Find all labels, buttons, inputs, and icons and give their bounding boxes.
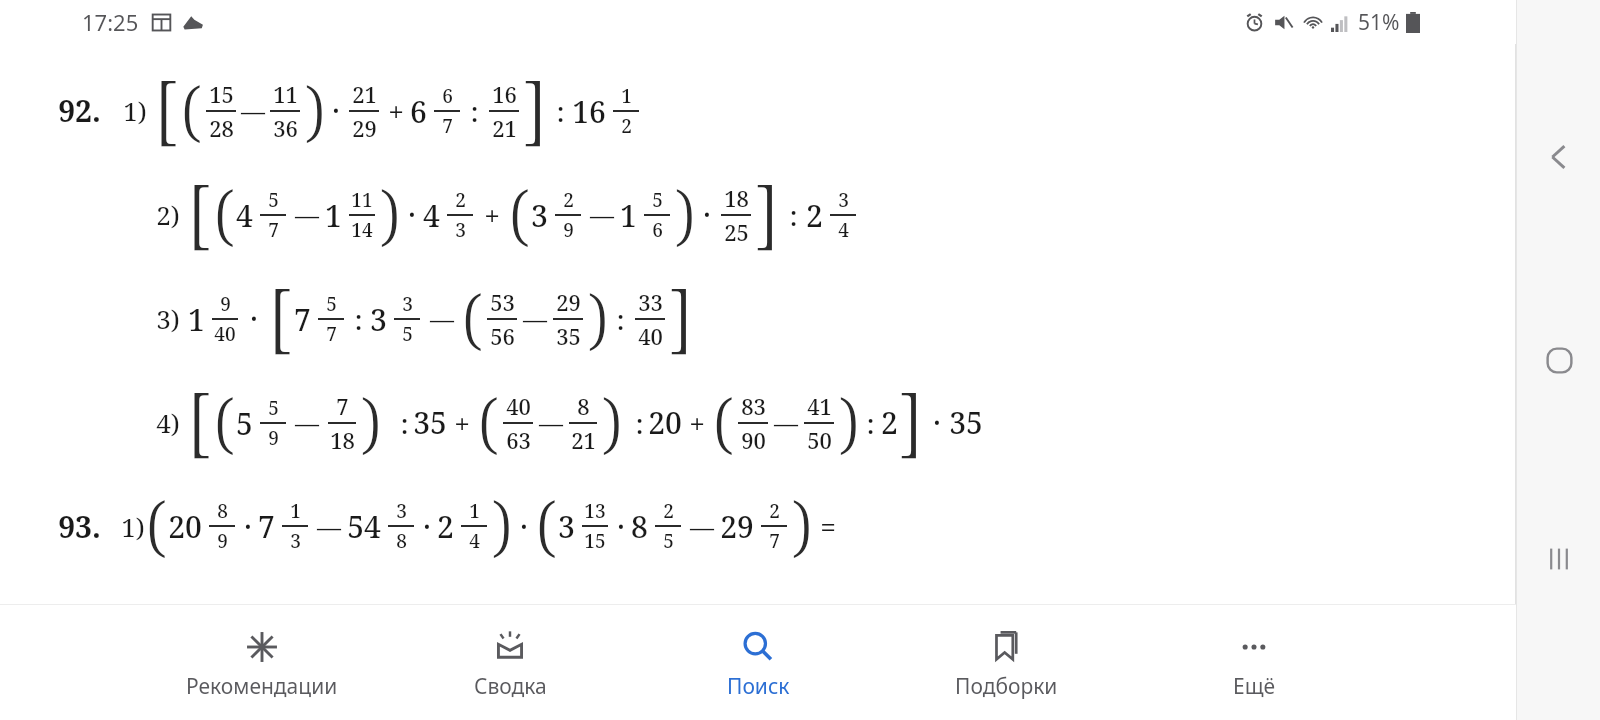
- staticText: 4): [156, 405, 180, 440]
- staticText: ): [587, 272, 608, 362]
- staticText: 15: [584, 528, 606, 554]
- staticText: 17:25: [82, 7, 139, 37]
- staticText: 7: [336, 391, 349, 421]
- staticText: 4: [423, 195, 440, 236]
- staticText: —: [295, 406, 319, 439]
- staticText: —: [690, 510, 714, 543]
- staticText: (: [214, 168, 235, 258]
- staticText: 5: [402, 321, 413, 347]
- staticText: 53: [490, 287, 515, 317]
- staticText: 5: [326, 291, 337, 317]
- staticText: 8: [396, 528, 407, 554]
- staticText: Ещё: [1233, 672, 1276, 701]
- staticText: 29: [556, 287, 581, 317]
- staticText: ]: [523, 58, 548, 159]
- staticText: ): [491, 479, 512, 569]
- staticText: ): [791, 479, 812, 569]
- staticText: 2: [881, 402, 898, 443]
- staticText: 90: [741, 425, 766, 455]
- button[interactable]: Ещё: [1130, 605, 1378, 720]
- staticText: ): [379, 168, 400, 258]
- staticText: [: [187, 162, 212, 263]
- staticText: (: [536, 479, 557, 569]
- button[interactable]: 92.: [0, 44, 1516, 604]
- staticText: 35: [949, 402, 983, 443]
- staticText: ]: [755, 162, 780, 263]
- staticText: ·: [423, 506, 431, 547]
- staticText: 25: [724, 217, 749, 247]
- staticText: 11: [273, 79, 298, 109]
- button[interactable]: Рекомендации: [138, 605, 386, 720]
- staticText: :: [616, 300, 625, 338]
- staticText: 6: [442, 83, 453, 109]
- staticText: (: [478, 376, 499, 466]
- staticText: 3: [370, 299, 387, 340]
- staticText: —: [590, 198, 614, 231]
- staticText: 3: [455, 217, 466, 243]
- staticText: 20: [168, 506, 202, 547]
- button[interactable]: Сводка: [386, 605, 634, 720]
- staticText: :: [354, 300, 363, 338]
- button[interactable]: Back: [1520, 118, 1598, 196]
- staticText: 35: [413, 402, 447, 443]
- staticText: (: [462, 272, 483, 362]
- staticText: ): [838, 376, 859, 466]
- staticText: ·: [408, 194, 416, 235]
- staticText: 54: [347, 506, 381, 547]
- staticText: :: [556, 92, 565, 130]
- staticText: 21: [352, 79, 377, 109]
- staticText: [: [154, 58, 179, 159]
- staticText: 92.: [58, 90, 101, 131]
- staticText: 2: [563, 187, 574, 213]
- staticText: 3: [558, 506, 575, 547]
- staticText: 35: [556, 321, 581, 351]
- staticText: —: [523, 302, 547, 335]
- staticText: +: [454, 404, 470, 442]
- staticText: :: [470, 92, 479, 130]
- staticText: 1: [621, 83, 632, 109]
- staticText: 6: [652, 217, 663, 243]
- staticText: (: [214, 376, 235, 466]
- staticText: 7: [268, 217, 279, 243]
- staticText: ·: [520, 506, 528, 547]
- staticText: [: [187, 370, 212, 471]
- staticText: 1: [290, 498, 301, 524]
- staticText: ·: [244, 506, 252, 547]
- staticText: 2: [621, 113, 632, 139]
- staticText: 8: [577, 391, 590, 421]
- staticText: ]: [899, 370, 924, 471]
- staticText: 7: [769, 528, 780, 554]
- button[interactable]: Recent apps: [1520, 520, 1598, 598]
- staticText: (: [146, 479, 167, 569]
- staticText: (: [181, 64, 202, 154]
- staticText: ·: [933, 402, 941, 443]
- staticText: Рекомендации: [186, 672, 338, 701]
- staticText: :: [866, 404, 875, 442]
- staticText: 21: [571, 425, 596, 455]
- button[interactable]: Home: [1520, 321, 1598, 399]
- staticText: 40: [506, 391, 531, 421]
- staticText: :: [789, 196, 798, 234]
- staticText: 5: [268, 187, 279, 213]
- staticText: ]: [669, 266, 694, 367]
- staticText: ·: [703, 194, 711, 235]
- staticText: 4: [469, 528, 480, 554]
- staticText: :: [635, 404, 644, 442]
- staticText: 8: [631, 506, 648, 547]
- staticText: =: [820, 507, 836, 545]
- staticText: (: [713, 376, 734, 466]
- staticText: 1: [469, 498, 480, 524]
- staticText: 7: [326, 321, 337, 347]
- staticText: 9: [217, 528, 228, 554]
- staticText: 4: [838, 217, 849, 243]
- button[interactable]: Подборки: [882, 605, 1130, 720]
- staticText: 7: [258, 506, 275, 547]
- staticText: 16: [572, 91, 606, 132]
- button[interactable]: Поиск: [634, 605, 882, 720]
- staticText: 2: [455, 187, 466, 213]
- staticText: 63: [506, 425, 531, 455]
- staticText: —: [241, 94, 265, 127]
- staticText: 2): [156, 197, 180, 232]
- staticText: 29: [352, 113, 377, 143]
- staticText: 9: [220, 291, 231, 317]
